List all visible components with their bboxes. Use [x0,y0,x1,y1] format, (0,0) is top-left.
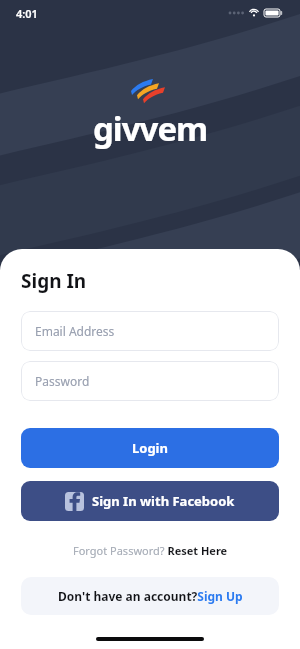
staticText: Password [35,373,90,389]
button[interactable]: Sign In with Facebook [21,481,279,521]
staticText: Login [132,439,168,457]
staticText: 4:01 [16,6,38,21]
staticText: Sign In with Facebook [92,492,235,510]
staticText: givvem [93,106,208,151]
button[interactable]: Don't have an account?Sign Up [21,577,279,615]
staticText: Sign In [21,268,87,294]
button[interactable]: Login [21,428,279,468]
button[interactable]: Password [21,361,279,401]
staticText: Forgot Password? Reset Here [73,543,228,558]
button[interactable]: Email Address [21,311,279,351]
button[interactable]: Forgot Password? Reset Here [21,543,279,558]
staticText: Email Address [35,323,115,339]
staticText: Don't have an account?Sign Up [58,588,243,604]
